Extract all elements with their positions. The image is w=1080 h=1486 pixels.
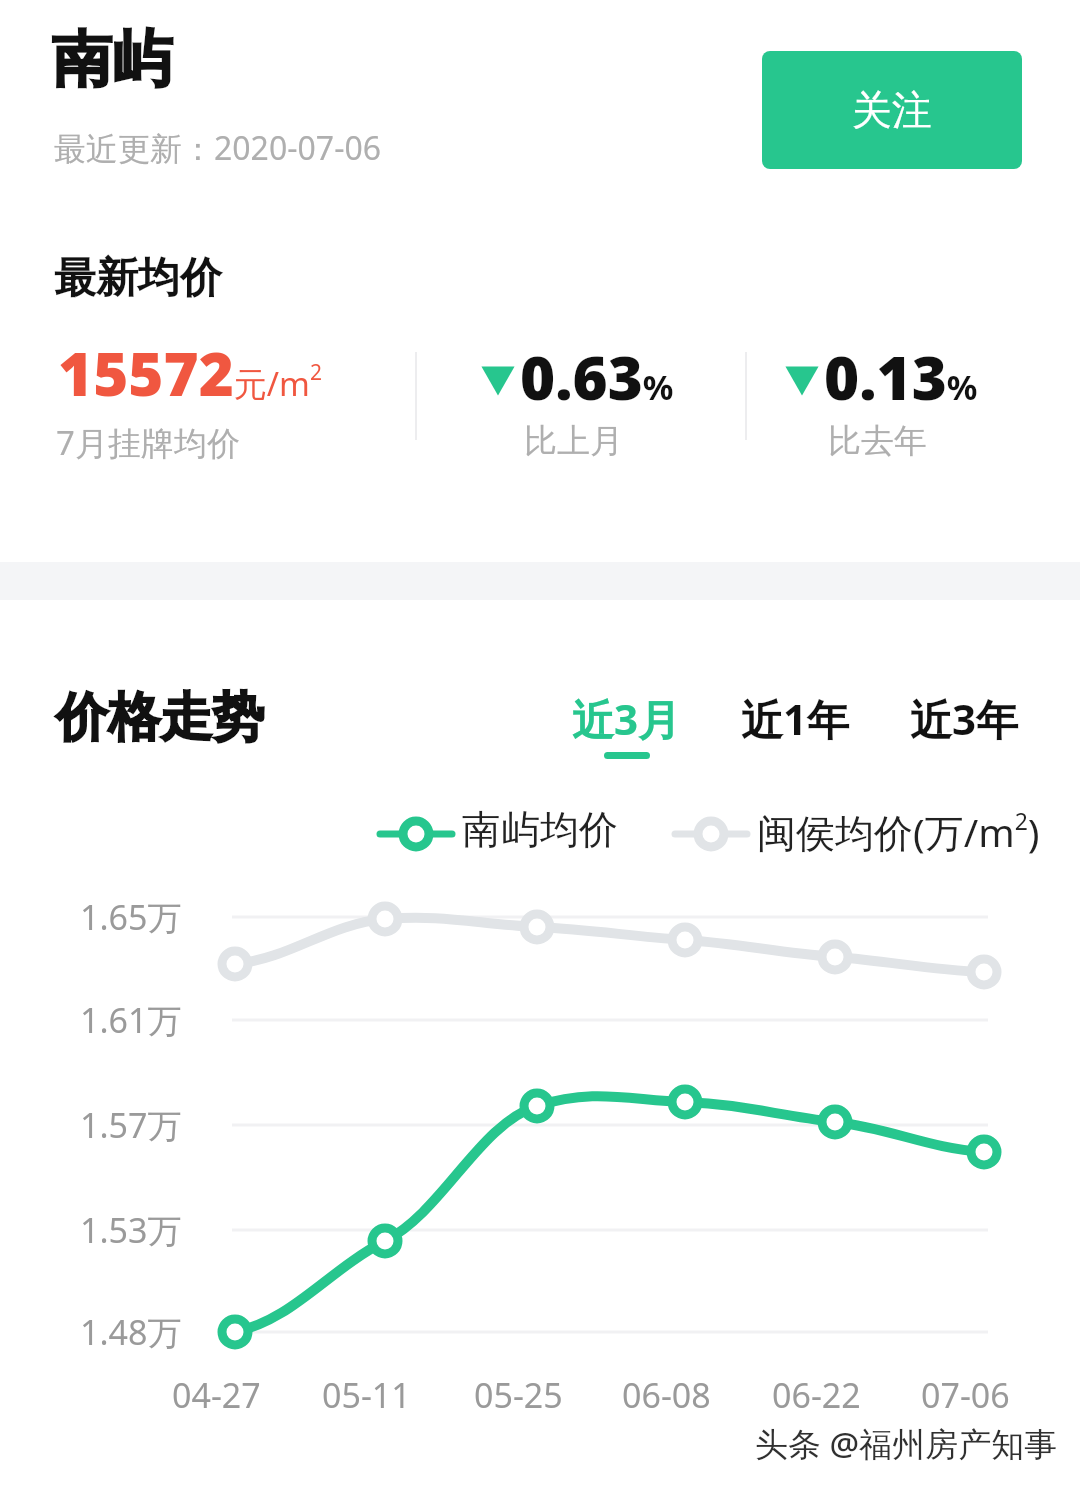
staticText: 南屿均价 xyxy=(462,805,618,854)
staticText: 近3年 xyxy=(910,690,1019,747)
other: Decrease xyxy=(480,346,516,408)
staticText: 价格走势 xyxy=(56,685,264,751)
staticText: 05-11 xyxy=(322,1372,411,1418)
staticText: 头条 @福州房产知事 xyxy=(755,1421,1058,1466)
staticText: 1.65万 xyxy=(80,894,182,940)
staticText: 06-08 xyxy=(622,1372,711,1418)
staticText: 15572元/m2 xyxy=(58,332,322,414)
staticText: 闽侯均价(万/m2) xyxy=(757,805,1040,858)
staticText: 0.13% xyxy=(824,336,978,418)
staticText: 近1年 xyxy=(741,690,850,747)
staticText: 近3月 xyxy=(572,690,681,747)
staticText: 比去年 xyxy=(828,420,927,462)
staticText: 比上月 xyxy=(524,420,623,462)
staticText: 最近更新：2020-07-06 xyxy=(54,126,382,170)
staticText: 1.61万 xyxy=(80,997,182,1043)
staticText: 1.57万 xyxy=(80,1102,182,1148)
staticText: 1.53万 xyxy=(80,1207,182,1253)
staticText: 最新均价 xyxy=(54,252,222,305)
button[interactable]: 近3年 xyxy=(910,690,1019,759)
button[interactable]: 关注 xyxy=(762,51,1022,169)
staticText: 南屿 xyxy=(52,22,172,98)
staticText: 关注 xyxy=(852,85,932,135)
staticText: 0.63% xyxy=(520,336,674,418)
other: Decrease xyxy=(784,346,820,408)
button[interactable]: 近3月 xyxy=(572,690,681,759)
staticText: 07-06 xyxy=(921,1372,1010,1418)
button[interactable]: Decrease xyxy=(784,336,978,418)
staticText: 04-27 xyxy=(172,1372,261,1418)
button[interactable]: 近1年 xyxy=(741,690,850,759)
staticText: 06-22 xyxy=(772,1372,861,1418)
staticText: 1.48万 xyxy=(80,1309,182,1355)
staticText: 05-25 xyxy=(474,1372,563,1418)
button[interactable]: Decrease xyxy=(480,336,674,418)
staticText: 7月挂牌均价 xyxy=(56,420,240,465)
